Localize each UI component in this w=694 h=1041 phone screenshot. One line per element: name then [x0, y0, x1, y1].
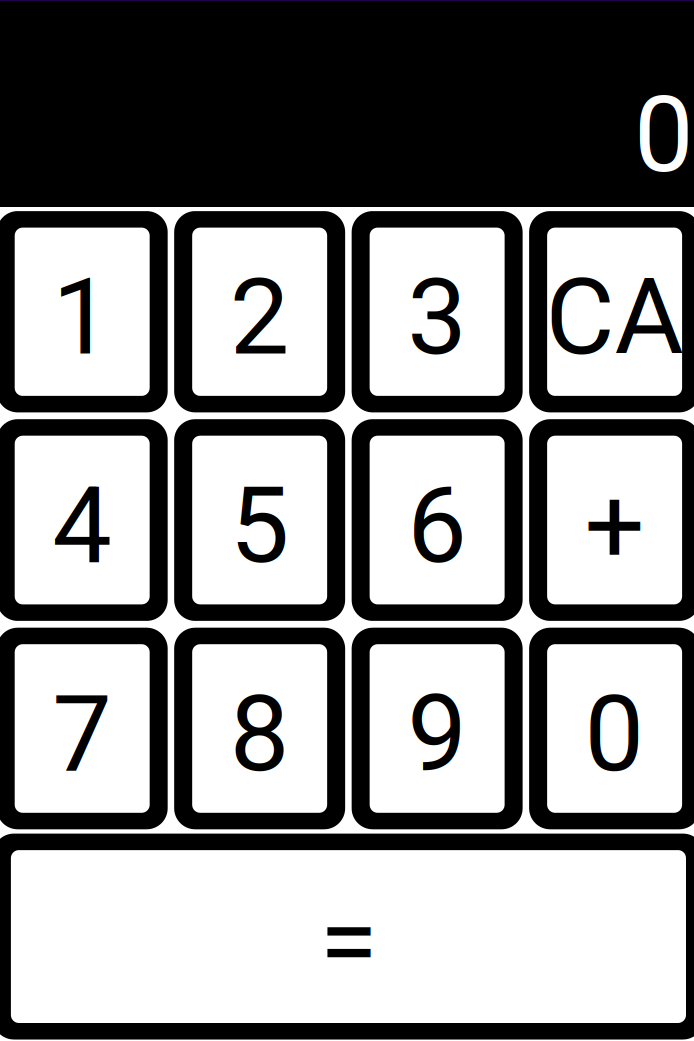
staticText: 3: [407, 255, 467, 379]
button[interactable]: 8: [174, 628, 345, 829]
button[interactable]: 6: [352, 419, 523, 621]
staticText: 8: [230, 672, 290, 796]
staticText: 5: [230, 463, 290, 588]
staticText: 9: [407, 672, 467, 796]
button[interactable]: 3: [352, 211, 523, 412]
button[interactable]: 7: [0, 628, 168, 829]
staticText: +: [585, 463, 645, 588]
button[interactable]: =: [0, 834, 694, 1039]
button[interactable]: +: [529, 419, 694, 621]
staticText: 4: [52, 463, 112, 588]
button[interactable]: 5: [174, 419, 345, 621]
staticText: =: [319, 880, 377, 1004]
button[interactable]: 1: [0, 211, 168, 412]
button[interactable]: 2: [174, 211, 345, 412]
staticText: 7: [52, 672, 112, 796]
button[interactable]: 0: [529, 628, 694, 829]
button[interactable]: 9: [352, 628, 523, 829]
staticText: 1: [52, 255, 112, 379]
staticText: CA: [546, 255, 684, 379]
staticText: 6: [407, 463, 467, 588]
staticText: 0: [634, 73, 694, 197]
button[interactable]: CA: [529, 211, 694, 412]
staticText: 0: [585, 672, 645, 796]
staticText: 2: [230, 255, 290, 379]
button[interactable]: 4: [0, 419, 168, 621]
